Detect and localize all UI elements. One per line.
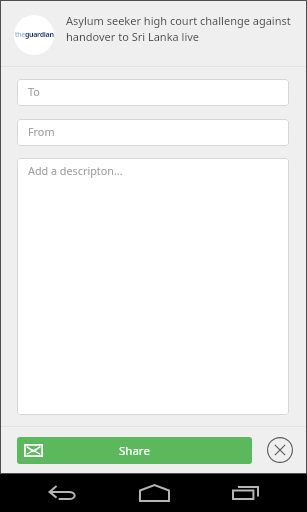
- staticText: Add a descripton...: [28, 163, 123, 178]
- staticText: To: [28, 84, 40, 99]
- button[interactable]: Close: [262, 432, 298, 468]
- button[interactable]: Share: [17, 437, 252, 464]
- button[interactable]: Home: [124, 474, 184, 512]
- button[interactable]: From: [17, 119, 289, 146]
- staticText: guardian: [25, 30, 54, 40]
- button[interactable]: Back: [32, 474, 92, 512]
- staticText: From: [28, 124, 55, 139]
- button[interactable]: To: [17, 79, 289, 106]
- button[interactable]: Recent apps: [215, 474, 275, 512]
- button[interactable]: Add a descripton...: [17, 158, 289, 415]
- staticText: Share: [119, 443, 150, 459]
- staticText: the: [15, 30, 25, 40]
- staticText: Asylum seeker high court challenge again…: [66, 13, 300, 44]
